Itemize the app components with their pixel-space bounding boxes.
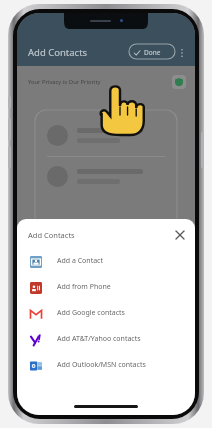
staticText: Add Google contacts — [57, 308, 125, 318]
button[interactable]: Privacy — [172, 75, 186, 89]
button[interactable]: Done — [124, 45, 170, 60]
button[interactable]: Add Google contacts — [17, 300, 195, 326]
staticText: Add a Contact — [57, 256, 103, 266]
staticText: Add Contacts — [28, 230, 75, 240]
staticText: Add Contacts — [28, 46, 88, 59]
staticText: Add Outlook/MSN contacts — [57, 360, 146, 370]
button[interactable]: Add Outlook/MSN contacts — [17, 352, 195, 378]
staticText: Add from Phone — [57, 282, 111, 292]
button[interactable]: Close — [172, 227, 187, 242]
button[interactable]: Add from Phone — [17, 274, 195, 300]
button[interactable]: Add AT&T/Yahoo contacts — [17, 326, 195, 352]
button[interactable]: Add a Contact — [17, 248, 195, 274]
button[interactable]: More options — [175, 46, 188, 59]
staticText: Done — [144, 48, 161, 57]
staticText: Add AT&T/Yahoo contacts — [57, 334, 141, 344]
staticText: Your Privacy is Our Priority — [28, 78, 101, 86]
